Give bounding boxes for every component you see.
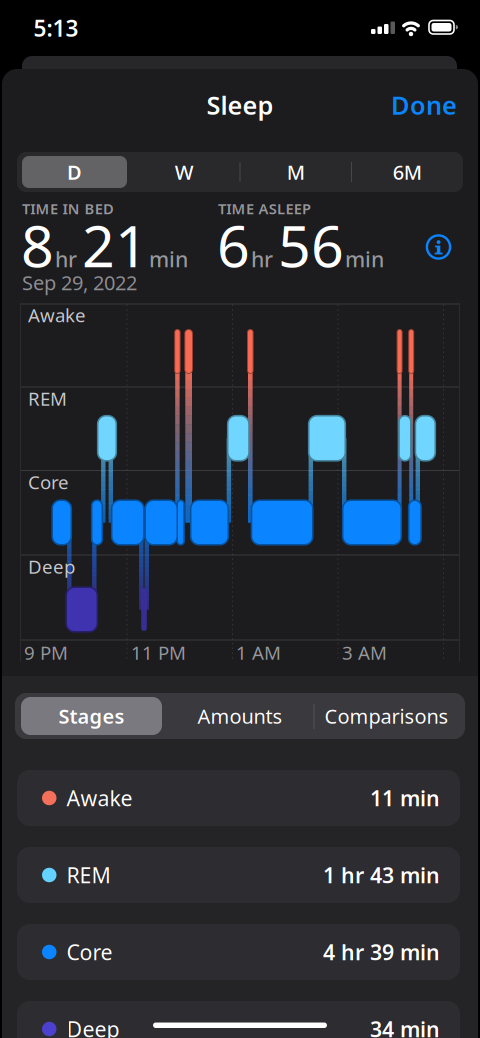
- button[interactable]: Awake: [17, 770, 460, 826]
- staticText: Core: [28, 470, 69, 494]
- button[interactable]: Deep: [17, 1001, 460, 1038]
- button[interactable]: Done: [384, 83, 464, 127]
- button[interactable]: M: [243, 154, 348, 190]
- staticText: 11 PM: [131, 640, 186, 665]
- staticText: 4 hr 39 min: [323, 938, 440, 966]
- staticText: hr: [251, 245, 273, 273]
- staticText: W: [175, 159, 194, 185]
- staticText: TIME ASLEEP: [218, 199, 311, 218]
- staticText: REM: [66, 861, 110, 889]
- staticText: Awake: [28, 303, 86, 327]
- staticText: Done: [391, 88, 457, 122]
- staticText: Comparisons: [324, 703, 448, 729]
- staticText: D: [67, 159, 82, 185]
- staticText: REM: [28, 386, 67, 411]
- staticText: 5:13: [33, 13, 78, 43]
- button[interactable]: D: [22, 154, 127, 190]
- staticText: M: [287, 159, 305, 185]
- staticText: 21: [82, 207, 148, 283]
- staticText: 8: [21, 207, 54, 283]
- button[interactable]: Stages: [21, 696, 161, 736]
- button[interactable]: Amounts: [170, 696, 310, 736]
- button[interactable]: 6M: [355, 154, 460, 190]
- staticText: Awake: [66, 784, 132, 812]
- staticText: Sleep: [206, 88, 273, 122]
- button[interactable]: Core: [17, 924, 460, 980]
- staticText: min: [345, 245, 384, 273]
- staticText: hr: [55, 245, 77, 273]
- button[interactable]: REM: [17, 847, 460, 903]
- staticText: Sep 29, 2022: [22, 269, 137, 296]
- staticText: 9 PM: [24, 640, 68, 665]
- staticText: 11 min: [370, 784, 440, 812]
- staticText: Core: [66, 938, 112, 966]
- staticText: 56: [278, 207, 344, 283]
- staticText: min: [149, 245, 188, 273]
- staticText: Stages: [58, 703, 124, 729]
- button[interactable]: Comparisons: [312, 696, 460, 736]
- staticText: TIME IN BED: [22, 199, 114, 218]
- staticText: 1 AM: [236, 640, 281, 665]
- staticText: 6: [217, 207, 250, 283]
- staticText: 6M: [393, 159, 422, 185]
- staticText: Deep: [28, 554, 75, 579]
- staticText: Amounts: [197, 703, 282, 729]
- staticText: Deep: [66, 1015, 119, 1038]
- button[interactable]: About Sleep Stages: [425, 234, 451, 260]
- staticText: 3 AM: [342, 640, 387, 665]
- staticText: 1 hr 43 min: [323, 861, 440, 889]
- button[interactable]: W: [132, 154, 237, 190]
- staticText: 34 min: [370, 1015, 440, 1038]
